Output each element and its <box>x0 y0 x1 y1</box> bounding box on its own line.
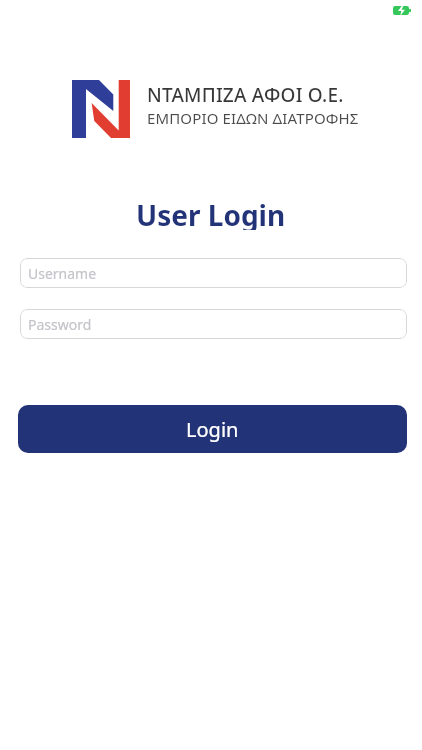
button[interactable]: Login <box>18 405 407 453</box>
staticText: User Login <box>136 196 286 230</box>
staticText: ΝΤΑΜΠΙΖΑ ΑΦΟΙ Ο.Ε. <box>147 82 344 108</box>
staticText: Password <box>28 315 92 334</box>
staticText: Login <box>186 416 239 443</box>
staticText: Username <box>28 264 97 283</box>
staticText: ΕΜΠΟΡΙΟ ΕΙΔΩΝ ΔΙΑΤΡΟΦΗΣ <box>147 108 359 128</box>
button[interactable]: Password <box>20 309 407 339</box>
button[interactable]: Username <box>20 258 407 288</box>
